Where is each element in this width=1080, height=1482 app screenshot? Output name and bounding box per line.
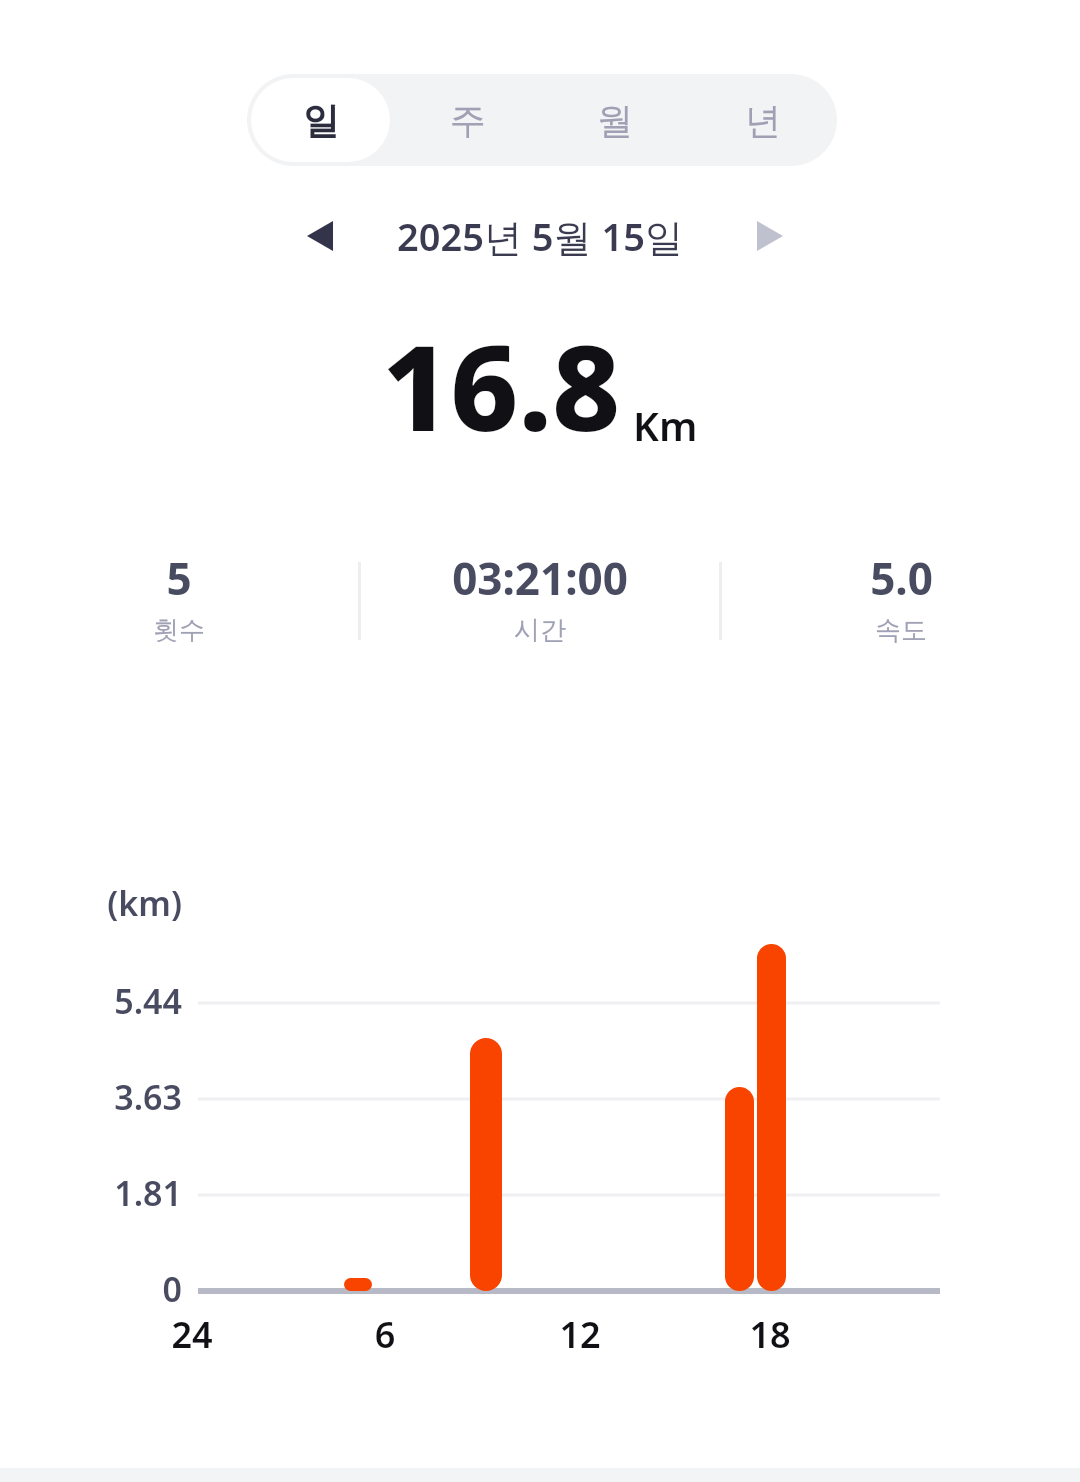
button[interactable]: 년 [689, 74, 837, 166]
staticText: 3.63 [0, 1074, 182, 1120]
staticText: 월 [597, 98, 633, 143]
button[interactable]: Previous day [270, 198, 370, 274]
staticText: 0 [0, 1266, 182, 1312]
staticText: 속도 [875, 614, 927, 647]
staticText: (km) [0, 880, 182, 926]
button[interactable]: 5.0 [722, 548, 1080, 647]
staticText: 년 [745, 98, 781, 143]
staticText: 시간 [514, 614, 566, 647]
button[interactable]: 주 [394, 74, 541, 166]
staticText: 6 [325, 1310, 445, 1359]
staticText: 5.44 [0, 978, 182, 1024]
staticText: 18 [710, 1310, 830, 1359]
staticText: 1.81 [0, 1170, 182, 1216]
staticText: 03:21:00 [452, 548, 628, 608]
staticText: 12 [520, 1310, 640, 1359]
button[interactable]: 일 [251, 78, 390, 162]
staticText: 주 [450, 98, 486, 143]
staticText: 5.0 [870, 548, 933, 608]
staticText: 5 [166, 548, 192, 608]
staticText: 횟수 [153, 614, 205, 647]
button[interactable]: Next day [720, 198, 820, 274]
staticText: 24 [132, 1310, 252, 1359]
button[interactable]: 03:21:00 [361, 548, 719, 647]
staticText: 2025년 5월 15일 [397, 210, 683, 262]
button[interactable]: 5 [0, 548, 358, 647]
staticText: Km [633, 398, 698, 452]
staticText: 16.8 [382, 305, 621, 466]
staticText: 일 [303, 98, 339, 143]
button[interactable]: 월 [541, 74, 689, 166]
